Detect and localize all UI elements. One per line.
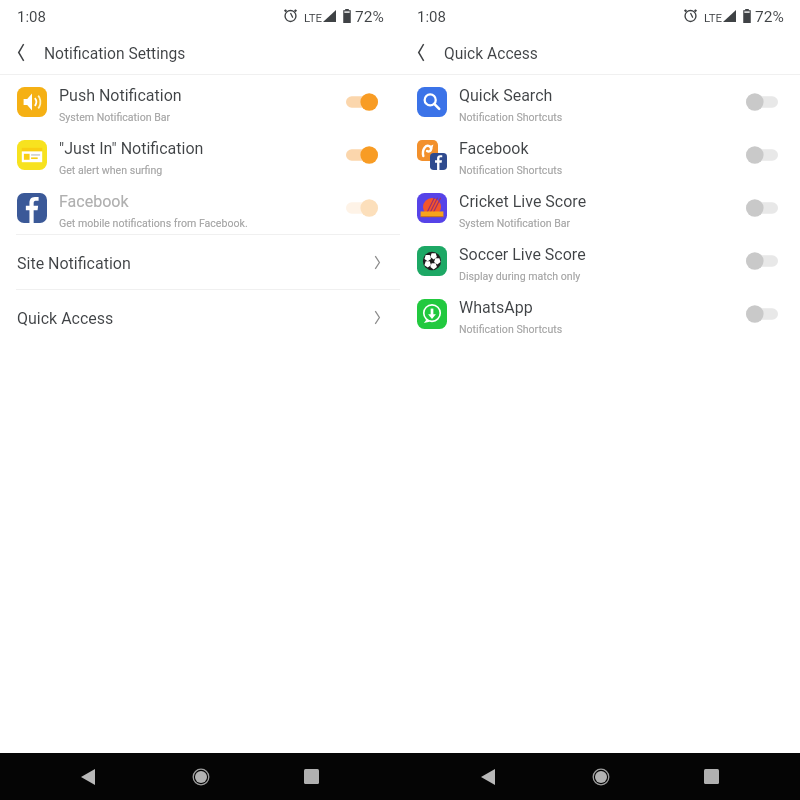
staticText: Quick Access <box>17 309 375 328</box>
button[interactable]: Toggle off <box>746 145 778 165</box>
staticText: Quick Access <box>444 45 538 63</box>
staticText: Notification Shortcuts <box>459 323 563 335</box>
button[interactable]: Toggle off <box>746 198 778 218</box>
staticText: WhatsApp <box>459 298 533 317</box>
staticText: Notification Shortcuts <box>459 164 563 176</box>
button[interactable]: WhatsApp <box>400 287 800 340</box>
button[interactable]: Quick Access <box>0 290 400 344</box>
button[interactable]: Quick Search <box>400 75 800 128</box>
staticText: Site Notification <box>17 254 375 273</box>
staticText: Quick Search <box>459 86 553 105</box>
staticText: System Notification Bar <box>459 217 571 229</box>
staticText: 1:08 <box>417 8 446 26</box>
staticText: Notification Settings <box>44 45 186 63</box>
button[interactable]: Soccer Live Score <box>400 234 800 287</box>
staticText: LTE <box>304 11 323 24</box>
button[interactable]: Recents <box>681 753 741 800</box>
button[interactable]: Back <box>400 753 520 800</box>
staticText: LTE <box>704 11 723 24</box>
staticText: Display during match only <box>459 270 581 282</box>
button[interactable]: Toggle off <box>746 251 778 271</box>
staticText: Notification Shortcuts <box>459 111 563 123</box>
staticText: "Just In" Notification <box>59 139 204 158</box>
button[interactable]: Toggle off <box>746 92 778 112</box>
staticText: Soccer Live Score <box>459 245 586 264</box>
staticText: Cricket Live Score <box>459 192 587 211</box>
button[interactable]: Recents <box>281 753 341 800</box>
button[interactable]: "Just In" Notification <box>0 128 400 181</box>
button[interactable]: Toggle on <box>346 145 378 165</box>
button[interactable]: Toggle on <box>346 92 378 112</box>
staticText: 1:08 <box>17 8 46 26</box>
button[interactable]: Facebook <box>0 181 400 234</box>
staticText: System Notification Bar <box>59 111 171 123</box>
button[interactable]: Cricket Live Score <box>400 181 800 234</box>
button[interactable]: Facebook <box>400 128 800 181</box>
staticText: Get mobile notifications from Facebook. <box>59 217 248 229</box>
button[interactable]: Home <box>170 753 230 800</box>
button[interactable]: Back <box>0 753 120 800</box>
button[interactable]: Toggle off <box>746 304 778 324</box>
staticText: Facebook <box>459 139 529 158</box>
staticText: Facebook <box>59 192 129 211</box>
button[interactable]: Back <box>0 33 42 75</box>
staticText: 72% <box>355 8 384 26</box>
button[interactable]: Home <box>570 753 630 800</box>
staticText: 72% <box>755 8 784 26</box>
staticText: Push Notification <box>59 86 182 105</box>
button[interactable]: Back <box>400 33 442 75</box>
staticText: Get alert when surfing <box>59 164 163 176</box>
button[interactable]: Push Notification <box>0 75 400 128</box>
button[interactable]: Site Notification <box>0 235 400 289</box>
button[interactable]: Toggle on <box>346 198 378 218</box>
